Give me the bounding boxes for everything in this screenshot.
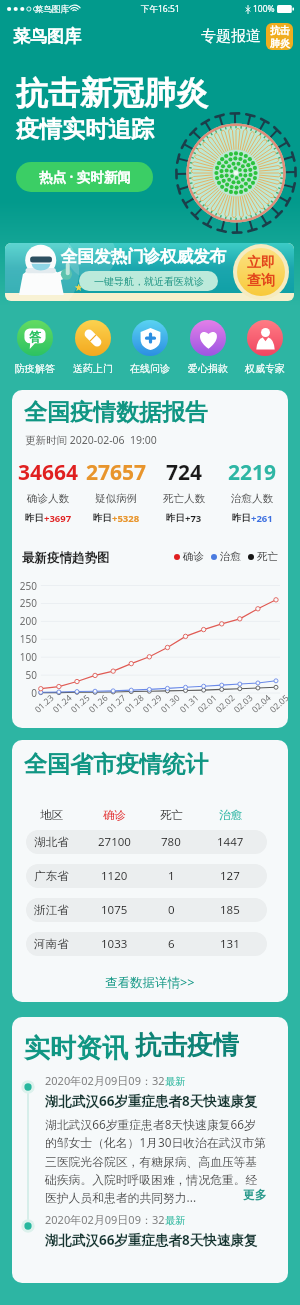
staticText: 治愈 [220,550,241,563]
staticText: 250 [12,579,37,593]
staticText: 查看数据详情>> [105,974,195,991]
staticText: 2020年02月09日09：32 [45,1073,165,1088]
staticText: 100% [253,3,275,15]
staticText: 湖北武汉66岁重症患者8天快速康复66岁的邹女士（化名）1月30日收治在武汉市第… [45,1116,267,1206]
staticText: 死亡人数 [163,492,205,505]
staticText: 200 [12,614,37,628]
button[interactable]: 2020年02月09日09：32 [45,1212,267,1249]
staticText: 死亡 [257,550,278,563]
staticText: 昨日 [166,512,185,524]
staticText: 02.01 [195,692,220,715]
staticText: +73 [185,512,202,525]
button[interactable]: 权威专家 [239,320,291,375]
staticText: 抗击 [270,24,290,37]
button[interactable]: 查看数据详情>> [12,971,288,993]
staticText: 在线问诊 [130,362,170,375]
staticText: 防疫解答 [15,362,55,375]
staticText: 一键导航，就近看医就诊 [94,275,204,288]
button[interactable]: 湖北省 [26,830,267,854]
staticText: 昨日 [232,512,251,524]
staticText: 确诊 [183,550,204,563]
staticText: 01.28 [122,692,147,715]
staticText: 实时资讯 [24,1029,135,1065]
staticText: 02.03 [231,692,256,715]
staticText: 治愈 [219,808,242,822]
staticText: +5328 [112,512,140,525]
staticText: 湖北省 [34,835,69,849]
staticText: 立即 [247,254,275,272]
staticText: 全国疫情数据报告 [24,398,208,427]
button[interactable]: 浙江省 [26,898,267,922]
button[interactable]: 在线问诊 [124,320,176,375]
staticText: 1447 [217,834,244,850]
staticText: 724 [166,458,203,487]
button[interactable]: 全国发热门诊权威发布 [5,243,294,301]
staticText: 肺炎 [270,37,290,50]
staticText: 湖北武汉66岁重症患者8天快速康复 [45,1092,258,1110]
staticText: 死亡 [160,808,183,822]
staticText: 100 [12,650,37,664]
staticText: 2020年02月09日09：32 [45,1212,165,1227]
staticText: 昨日 [25,512,44,524]
staticText: 50 [12,668,37,682]
staticText: 0 [12,686,37,700]
staticText: 02.02 [213,692,238,715]
staticText: 01.23 [32,692,57,715]
staticText: 疑似病例 [95,492,137,505]
staticText: 2219 [228,458,277,487]
staticText: 确诊人数 [27,492,69,505]
staticText: 150 [12,632,37,646]
staticText: 02.05 [267,692,288,715]
staticText: 更新时间 2020-02-06 19:00 [25,433,157,447]
button[interactable]: 抗击肺炎 [266,23,293,50]
staticText: 01.31 [177,692,202,715]
staticText: 湖北武汉66岁重症患者8天快速康复 [45,1231,258,1249]
staticText: 最新疫情趋势图 [22,550,110,566]
button[interactable]: 广东省 [26,864,267,888]
button[interactable]: 送药上门 [67,320,119,375]
staticText: 菜鸟图库 [35,4,69,15]
staticText: 专题报道 [201,27,261,46]
staticText: 1120 [101,868,128,884]
staticText: 全国省市疫情统计 [24,750,208,779]
staticText: 最新 [165,1075,185,1088]
staticText: 地区 [40,808,63,822]
staticText: 查询 [247,272,275,290]
staticText: 01.27 [104,692,129,715]
staticText: 下午16:51 [141,3,180,15]
staticText: 1033 [101,936,128,952]
staticText: 01.29 [140,692,165,715]
button[interactable]: 2020年02月09日09：32 [45,1073,267,1221]
staticText: 01.26 [86,692,111,715]
staticText: 34664 [18,458,79,487]
staticText: 01.25 [68,692,93,715]
staticText: 27657 [86,458,147,487]
staticText: 答 [29,329,41,344]
staticText: 131 [220,936,240,952]
staticText: 最新 [165,1214,185,1227]
staticText: 全国发热门诊权威发布 [61,246,226,267]
staticText: 127 [220,868,240,884]
staticText: 热点 · 实时新闻 [39,168,131,186]
staticText: 6 [168,936,175,952]
staticText: 780 [161,834,181,850]
staticText: 01.30 [158,692,183,715]
staticText: 抗击疫情 [135,1029,239,1062]
staticText: 昨日 [93,512,112,524]
button[interactable]: 答 [9,320,61,375]
staticText: 送药上门 [73,362,113,375]
staticText: 广东省 [34,869,69,883]
staticText: 27100 [98,834,131,850]
staticText: +3697 [44,512,72,525]
button[interactable]: 立即 [237,248,285,296]
button[interactable]: 热点 · 实时新闻 [16,162,153,192]
button[interactable]: 爱心捐款 [182,320,234,375]
staticText: +261 [251,512,273,525]
staticText: 菜鸟图库 [13,26,81,47]
button[interactable]: 河南省 [26,932,267,956]
staticText: 01.24 [50,692,75,715]
staticText: 权威专家 [245,362,285,375]
staticText: 更多 [243,1188,267,1203]
staticText: 治愈人数 [231,492,273,505]
staticText: 1 [168,868,175,884]
